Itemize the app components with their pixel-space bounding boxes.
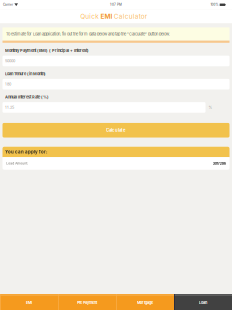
staticText: 50000 bbox=[5, 59, 15, 63]
staticText: Loan Tenure (in Month) bbox=[5, 71, 46, 76]
button[interactable]: Calculate bbox=[2, 123, 229, 137]
staticText: 3017286 bbox=[213, 161, 226, 165]
button[interactable]: Loan bbox=[174, 294, 232, 310]
staticText: Mortgage bbox=[137, 300, 153, 305]
staticText: EMI bbox=[100, 12, 112, 20]
staticText: Monthly Payment (EMI) ( Principal + Inte… bbox=[5, 48, 89, 53]
staticText: % bbox=[208, 105, 212, 110]
staticText: 100% bbox=[210, 3, 218, 7]
staticText: Calculate bbox=[106, 128, 126, 133]
staticText: Loan bbox=[199, 300, 207, 305]
staticText: Quick bbox=[80, 12, 99, 20]
staticText: To estimate for Loan application, fill o… bbox=[6, 32, 170, 36]
staticText: 11.25 bbox=[5, 105, 14, 110]
staticText: Load Amount: bbox=[6, 161, 28, 165]
staticText: EMI bbox=[26, 300, 32, 305]
button[interactable]: Pre Payment bbox=[58, 294, 116, 310]
staticText: 180 bbox=[5, 82, 11, 86]
staticText: Pre Payment bbox=[77, 300, 97, 305]
staticText: 1:07 PM bbox=[110, 3, 122, 7]
staticText: Carrier bbox=[3, 3, 13, 7]
button[interactable]: EMI bbox=[0, 294, 58, 310]
staticText: Calculator bbox=[114, 12, 147, 20]
staticText: You can apply for: bbox=[5, 149, 47, 155]
button[interactable]: Mortgage bbox=[116, 294, 174, 310]
staticText: Annual Interest Rate (%) bbox=[5, 95, 49, 99]
